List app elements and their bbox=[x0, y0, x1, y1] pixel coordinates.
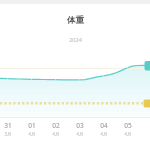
staticText: 3月 bbox=[4, 131, 12, 137]
staticText: 01 bbox=[28, 121, 36, 130]
staticText: 05 bbox=[124, 121, 132, 130]
staticText: 4月 bbox=[100, 131, 108, 137]
staticText: 4月 bbox=[76, 131, 84, 137]
staticText: 04 bbox=[100, 121, 108, 130]
staticText: 4月 bbox=[52, 131, 60, 137]
staticText: 体重 bbox=[67, 15, 84, 26]
staticText: 31 bbox=[4, 121, 12, 130]
staticText: 4月 bbox=[28, 131, 36, 137]
staticText: 02 bbox=[52, 121, 60, 130]
staticText: 03 bbox=[76, 121, 84, 130]
staticText: 4月 bbox=[124, 131, 132, 137]
staticText: 2024 bbox=[69, 36, 82, 43]
